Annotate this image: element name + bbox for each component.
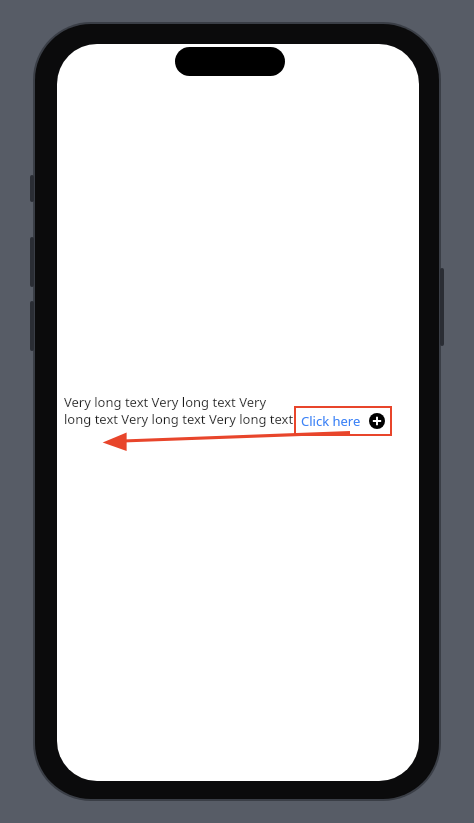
staticText: Very long text Very long text Very long … xyxy=(64,393,296,428)
button[interactable]: Click here xyxy=(294,406,392,436)
staticText: Click here xyxy=(301,412,361,430)
other: Add xyxy=(369,413,385,429)
